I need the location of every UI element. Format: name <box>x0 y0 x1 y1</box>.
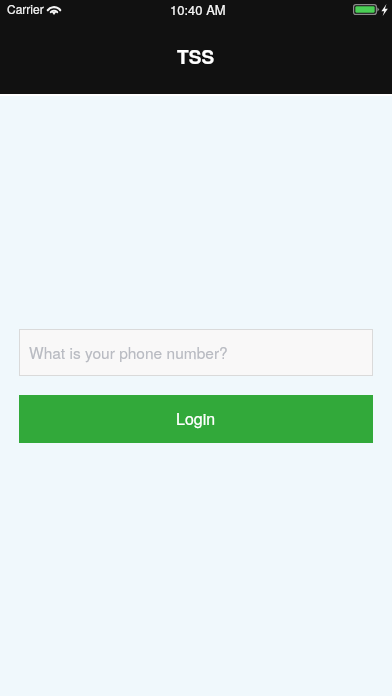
staticText: TSS <box>177 43 215 65</box>
other: Wi-Fi signal <box>46 3 62 16</box>
staticText: What is your phone number? <box>29 341 228 363</box>
button[interactable]: Login <box>19 395 373 443</box>
button[interactable]: Phone number input <box>19 329 373 376</box>
staticText: Carrier <box>7 0 44 17</box>
staticText: 10:40 AM <box>170 0 226 19</box>
other: Battery charging <box>353 4 381 16</box>
staticText: Login <box>176 407 216 430</box>
button[interactable]: TSS <box>177 40 215 62</box>
